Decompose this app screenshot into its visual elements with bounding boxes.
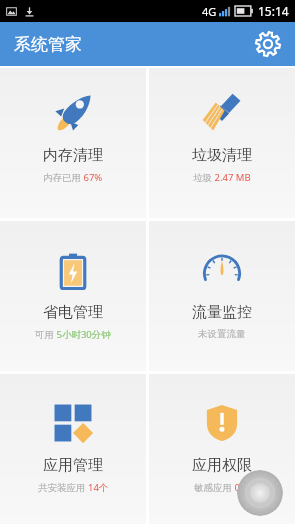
staticText: 流量监控 [192,303,252,322]
staticText: 系统管家 [14,34,82,55]
staticText: 未设置流量 [198,328,246,340]
staticText: 4G [202,4,217,19]
staticText: 15:14 [258,3,289,19]
button[interactable]: 省电管理 [0,221,146,371]
staticText: 内存已用 67% [43,171,103,184]
staticText: 敏感应用 0个 [194,481,250,494]
staticText: 可用 5小时30分钟 [35,328,111,341]
staticText: 内存清理 [43,146,103,165]
staticText: 省电管理 [43,303,103,322]
button[interactable]: 垃圾清理 [149,68,295,218]
staticText: 应用权限 [192,456,252,475]
button[interactable]: 内存清理 [0,68,146,218]
button[interactable]: 流量监控 [149,221,295,371]
staticText: 应用管理 [43,456,103,475]
button[interactable]: 应用管理 [0,374,146,524]
button[interactable]: 应用权限 [149,374,295,524]
button[interactable]: Assistive touch [237,470,283,516]
staticText: 垃圾 2.47 MB [193,171,251,184]
button[interactable]: Settings [251,27,285,61]
staticText: 共安装应用 14个 [38,481,109,494]
staticText: 垃圾清理 [192,146,252,165]
